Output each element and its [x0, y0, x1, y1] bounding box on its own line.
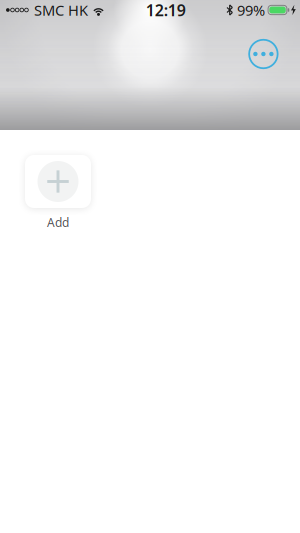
- button[interactable]: Add: [25, 155, 91, 230]
- staticText: Add: [47, 214, 69, 230]
- staticText: 12:19: [146, 0, 186, 21]
- staticText: 99%: [237, 0, 265, 20]
- button[interactable]: More options: [243, 34, 283, 74]
- staticText: SMC HK: [34, 0, 88, 20]
